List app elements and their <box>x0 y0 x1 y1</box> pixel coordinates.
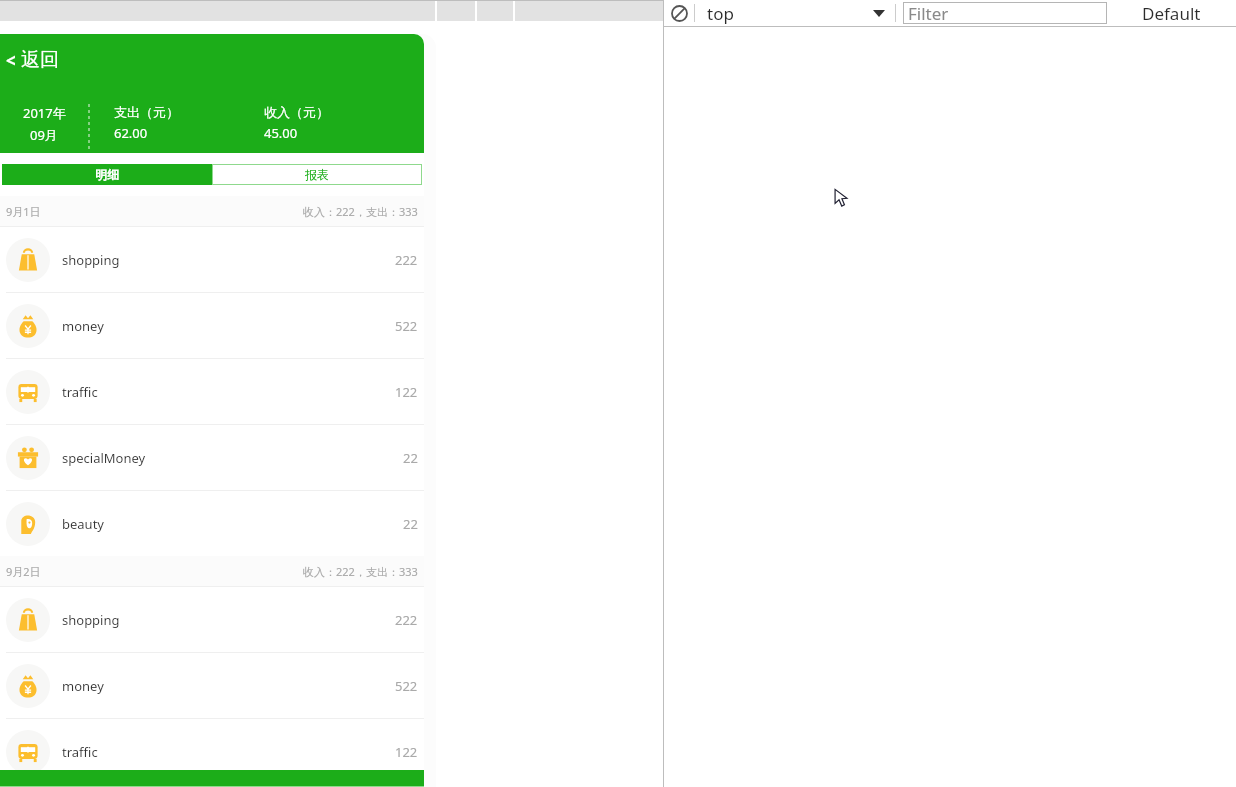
staticText: 122 <box>395 383 418 401</box>
staticText: traffic <box>62 383 98 401</box>
staticText: 明细 <box>95 167 119 182</box>
button[interactable]: Filter <box>903 2 1107 24</box>
staticText: 522 <box>395 317 418 335</box>
button[interactable]: specialMoney <box>0 425 424 490</box>
staticText: 45.00 <box>264 124 298 142</box>
staticText: 9月1日 <box>6 204 41 219</box>
staticText: Default <box>1142 2 1201 25</box>
button[interactable]: shopping <box>0 227 424 292</box>
staticText: 09月 <box>30 126 58 144</box>
staticText: 62.00 <box>114 124 148 142</box>
staticText: money <box>62 317 104 335</box>
staticText: specialMoney <box>62 449 146 467</box>
staticText: shopping <box>62 251 120 269</box>
staticText: 22 <box>403 515 418 533</box>
button[interactable]: traffic <box>0 359 424 424</box>
staticText: 收入：222，支出：333 <box>303 204 418 219</box>
staticText: 返回 <box>21 48 59 72</box>
button[interactable]: Clear log <box>664 0 694 26</box>
button[interactable]: traffic <box>0 719 424 784</box>
staticText: 9月2日 <box>6 564 41 579</box>
staticText: 收入（元） <box>264 104 329 120</box>
staticText: money <box>62 677 104 695</box>
button[interactable]: money <box>0 293 424 358</box>
staticText: 222 <box>395 611 418 629</box>
staticText: traffic <box>62 743 98 761</box>
button[interactable]: < <box>6 48 59 72</box>
staticText: 122 <box>395 743 418 761</box>
staticText: 收入：222，支出：333 <box>303 564 418 579</box>
button[interactable]: shopping <box>0 587 424 652</box>
staticText: 支出（元） <box>114 104 179 120</box>
staticText: 222 <box>395 251 418 269</box>
button[interactable]: beauty <box>0 491 424 556</box>
staticText: shopping <box>62 611 120 629</box>
staticText: 2017年 <box>23 104 66 122</box>
button[interactable]: money <box>0 653 424 718</box>
staticText: 报表 <box>305 167 329 182</box>
staticText: < <box>6 49 16 72</box>
button[interactable]: top <box>695 0 895 26</box>
staticText: top <box>707 2 734 25</box>
button[interactable]: 报表 <box>212 164 422 185</box>
staticText: 522 <box>395 677 418 695</box>
staticText: 22 <box>403 449 418 467</box>
button[interactable]: 明细 <box>2 164 212 185</box>
staticText: Filter <box>908 2 949 24</box>
staticText: beauty <box>62 515 104 533</box>
